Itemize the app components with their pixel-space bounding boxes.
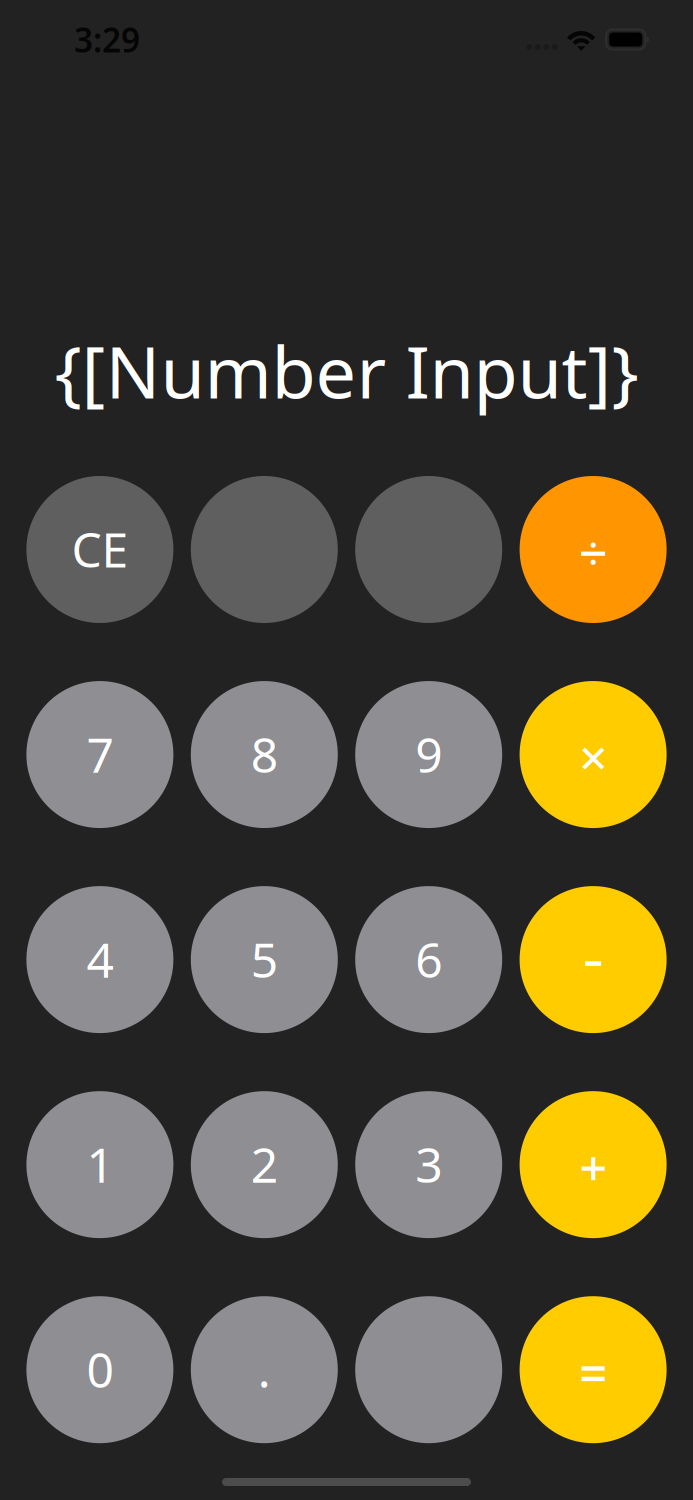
staticText: {[Number Input]} [54,323,638,418]
button[interactable]: Multiply [520,681,667,828]
button[interactable]: 4 [26,886,173,1033]
staticText: . [258,1337,271,1401]
staticText: 9 [415,722,442,786]
button[interactable]: 5 [191,886,338,1033]
button[interactable]: Blank key [355,1296,502,1443]
staticText: 4 [86,927,113,991]
button[interactable]: Divide [520,476,667,623]
button[interactable]: 7 [26,681,173,828]
staticText: CE [71,517,128,581]
button[interactable]: 6 [355,886,502,1033]
staticText: 2 [251,1132,278,1196]
staticText: 3 [415,1132,442,1196]
button[interactable]: CE [26,476,173,623]
staticText: 7 [86,722,113,786]
button[interactable]: . [191,1296,338,1443]
staticText: 0 [86,1337,113,1401]
button[interactable]: 0 [26,1296,173,1443]
button[interactable]: 2 [191,1091,338,1238]
staticText: 1 [86,1132,113,1196]
button[interactable]: 8 [191,681,338,828]
button[interactable]: 9 [355,681,502,828]
button[interactable]: Subtract [520,886,667,1033]
button[interactable]: 3 [355,1091,502,1238]
staticText: 6 [415,927,442,991]
button[interactable]: 1 [26,1091,173,1238]
staticText: 5 [251,927,278,991]
button[interactable]: Blank key [191,476,338,623]
staticText: 8 [251,722,278,786]
button[interactable]: Blank key [355,476,502,623]
staticText: 3:29 [74,17,140,62]
button[interactable]: Add [520,1091,667,1238]
button[interactable]: Equals [520,1296,667,1443]
